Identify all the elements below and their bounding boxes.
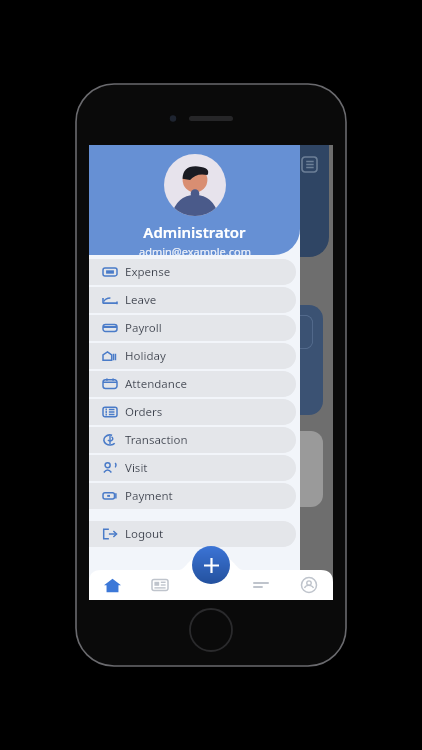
staticText: Administrator <box>143 222 246 242</box>
button[interactable]: Visit <box>89 455 296 481</box>
button[interactable]: Transaction <box>89 427 296 453</box>
button[interactable]: Leave <box>89 287 296 313</box>
staticText: View All <box>239 285 279 300</box>
button[interactable]: Logout <box>89 521 296 547</box>
button[interactable]: Holiday <box>89 343 296 369</box>
staticText: Holiday <box>125 348 166 364</box>
staticText: Payment <box>125 488 173 504</box>
button[interactable]: News <box>136 570 184 600</box>
button[interactable]: Attendance <box>89 371 296 397</box>
button[interactable]: Payroll <box>89 315 296 341</box>
button[interactable]: Orders <box>89 399 296 425</box>
staticText: Leave <box>125 292 157 308</box>
staticText: Attendance <box>125 376 187 392</box>
button[interactable]: Menu <box>237 570 285 600</box>
staticText: Transaction <box>125 432 188 448</box>
staticText: Orders <box>125 404 163 420</box>
staticText: Visit <box>125 460 148 476</box>
button[interactable]: Profile <box>285 570 333 600</box>
staticText: Payroll <box>125 320 162 336</box>
button[interactable]: Expense <box>89 259 296 285</box>
button[interactable]: Add <box>192 546 230 584</box>
button[interactable]: Home <box>89 570 136 600</box>
staticText: Logout <box>125 526 164 542</box>
staticText: admin@example.com <box>139 244 251 255</box>
button[interactable]: Payment <box>89 483 296 509</box>
staticText: Expense <box>125 264 171 280</box>
